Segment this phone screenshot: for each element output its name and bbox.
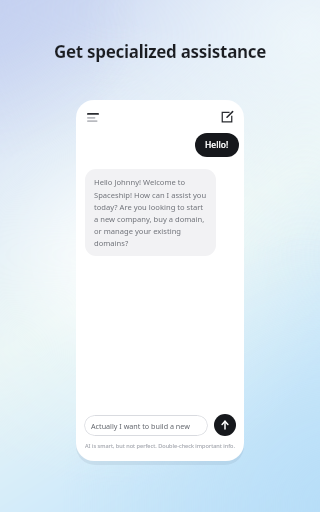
button[interactable]: Hello Johnny! Welcome to Spaceship! How … <box>85 169 216 256</box>
staticText: Hello! <box>205 139 229 151</box>
button[interactable]: Actually I want to build a new company a <box>84 415 208 436</box>
button[interactable]: Menu <box>82 106 104 128</box>
staticText: Get specialized assistance <box>0 40 320 63</box>
staticText: AI is smart, but not perfect. Double-che… <box>76 442 244 450</box>
staticText: Hello Johnny! Welcome to Spaceship! How … <box>94 177 207 248</box>
button[interactable]: Hello! <box>195 133 239 157</box>
button[interactable]: Send <box>214 414 236 436</box>
button[interactable]: New chat <box>216 106 238 128</box>
staticText: Actually I want to build a new company a <box>91 421 201 431</box>
